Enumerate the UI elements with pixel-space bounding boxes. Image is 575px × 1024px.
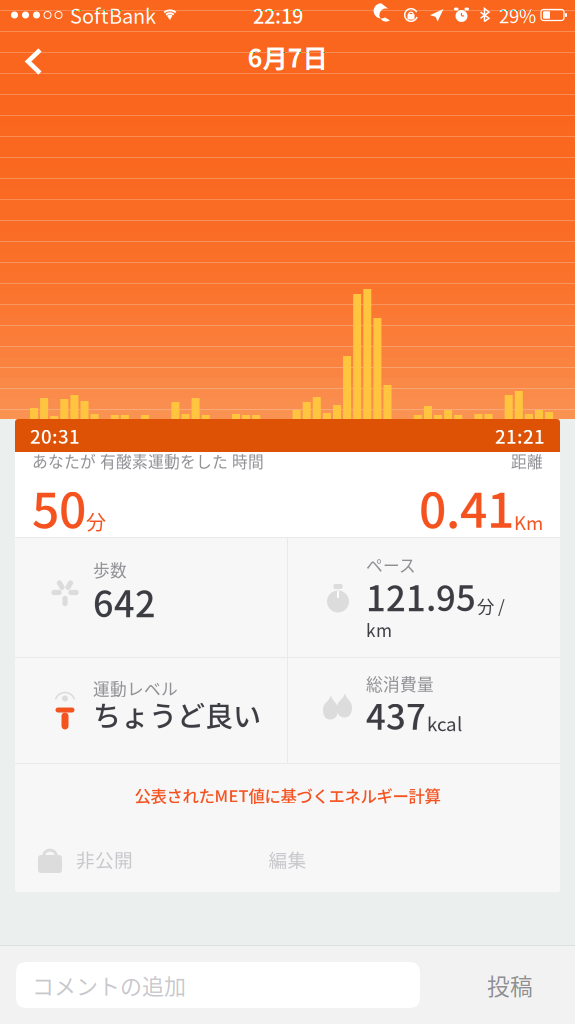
staticText: 21:21	[495, 422, 545, 449]
staticText: 非公開	[76, 845, 133, 872]
staticText: 距離	[511, 449, 543, 472]
button[interactable]: 投稿	[461, 962, 559, 1008]
staticText: 29%	[499, 1, 536, 28]
staticText: ペース	[366, 553, 416, 577]
staticText: 22:19	[253, 0, 303, 29]
staticText: 投稿	[487, 969, 533, 1001]
staticText: 121.95	[366, 571, 476, 621]
staticText: 50	[32, 472, 86, 542]
staticText: 437	[366, 689, 426, 740]
staticText: SoftBank	[70, 0, 156, 29]
staticText: あなたが 有酸素運動をした 時間	[32, 449, 264, 472]
button[interactable]: コメントの追加	[16, 962, 420, 1008]
staticText: 編集	[268, 845, 306, 872]
staticText: ちょうど良い	[93, 694, 261, 735]
staticText: 分 /	[477, 593, 505, 618]
staticText: 0.41	[419, 472, 514, 542]
staticText: km	[366, 617, 392, 642]
staticText: 分	[86, 507, 106, 536]
staticText: 歩数	[93, 557, 127, 581]
staticText: 6月7日	[247, 38, 327, 75]
button[interactable]: 編集	[239, 826, 335, 892]
staticText: 運動レベル	[93, 676, 178, 700]
staticText: 20:31	[30, 422, 80, 449]
staticText: コメントの追加	[32, 969, 186, 1001]
staticText: 公表されたMET値に基づくエネルギー計算	[134, 783, 440, 807]
button[interactable]: Back	[6, 33, 52, 80]
button[interactable]: 公表されたMET値に基づくエネルギー計算	[15, 764, 560, 826]
button[interactable]: 非公開	[15, 826, 133, 892]
staticText: kcal	[427, 710, 462, 737]
staticText: Km	[514, 509, 543, 536]
staticText: 総消費量	[366, 671, 434, 695]
staticText: 642	[93, 575, 156, 628]
